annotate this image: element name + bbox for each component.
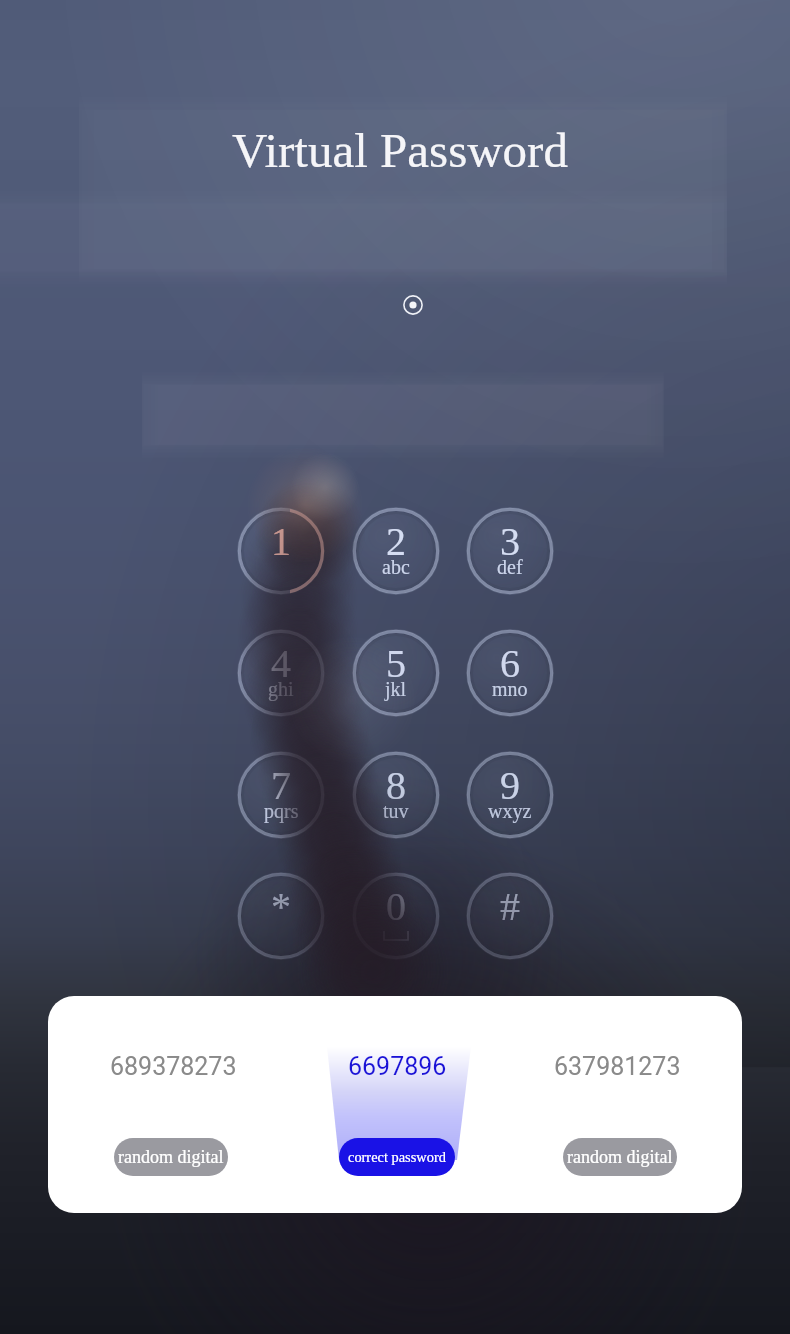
button[interactable]: random digital [563, 1138, 677, 1176]
staticText: jkl [385, 678, 407, 700]
staticText: tuv [383, 800, 409, 822]
staticText: ghi [268, 678, 294, 700]
staticText: random digital [567, 1147, 673, 1167]
staticText: 1 [271, 519, 291, 563]
staticText: 3 [500, 519, 520, 563]
button[interactable]: Key 3 [466, 507, 554, 595]
staticText: def [497, 556, 523, 578]
button[interactable]: Key 1 [237, 507, 325, 595]
staticText: 689378273 [110, 1052, 237, 1081]
staticText: abc [382, 556, 410, 578]
button[interactable]: Key # [466, 872, 554, 960]
button[interactable]: Key 2 [352, 507, 440, 595]
staticText: 637981273 [554, 1052, 681, 1081]
staticText: 2 [386, 519, 406, 563]
staticText: wxyz [488, 800, 532, 822]
staticText: 5 [386, 641, 406, 685]
staticText: # [500, 884, 520, 928]
staticText: 6697896 [348, 1052, 447, 1081]
button[interactable]: Key * [237, 872, 325, 960]
staticText: 9 [500, 763, 520, 807]
staticText: correct password [348, 1149, 446, 1165]
button[interactable]: Key 4 [237, 629, 325, 717]
staticText: 7 [271, 763, 291, 807]
button[interactable]: Key 8 [352, 751, 440, 839]
button[interactable]: correct password [339, 1138, 455, 1176]
staticText: pqrs [264, 800, 299, 822]
staticText: 8 [386, 763, 406, 807]
staticText: Virtual Password [232, 123, 568, 177]
staticText: mno [492, 678, 528, 700]
staticText: random digital [118, 1147, 224, 1167]
button[interactable]: Key 5 [352, 629, 440, 717]
staticText: 4 [271, 641, 291, 685]
button[interactable]: Key 9 [466, 751, 554, 839]
button[interactable]: Password entry indicator [397, 289, 429, 321]
button[interactable]: Key 6 [466, 629, 554, 717]
button[interactable]: random digital [114, 1138, 228, 1176]
staticText: 6 [500, 641, 520, 685]
staticText: 1 [271, 519, 291, 563]
staticText: 0 [386, 884, 406, 928]
button[interactable]: Key 0 [352, 872, 440, 960]
button[interactable]: Key 7 [237, 751, 325, 839]
staticText: * [271, 884, 291, 928]
